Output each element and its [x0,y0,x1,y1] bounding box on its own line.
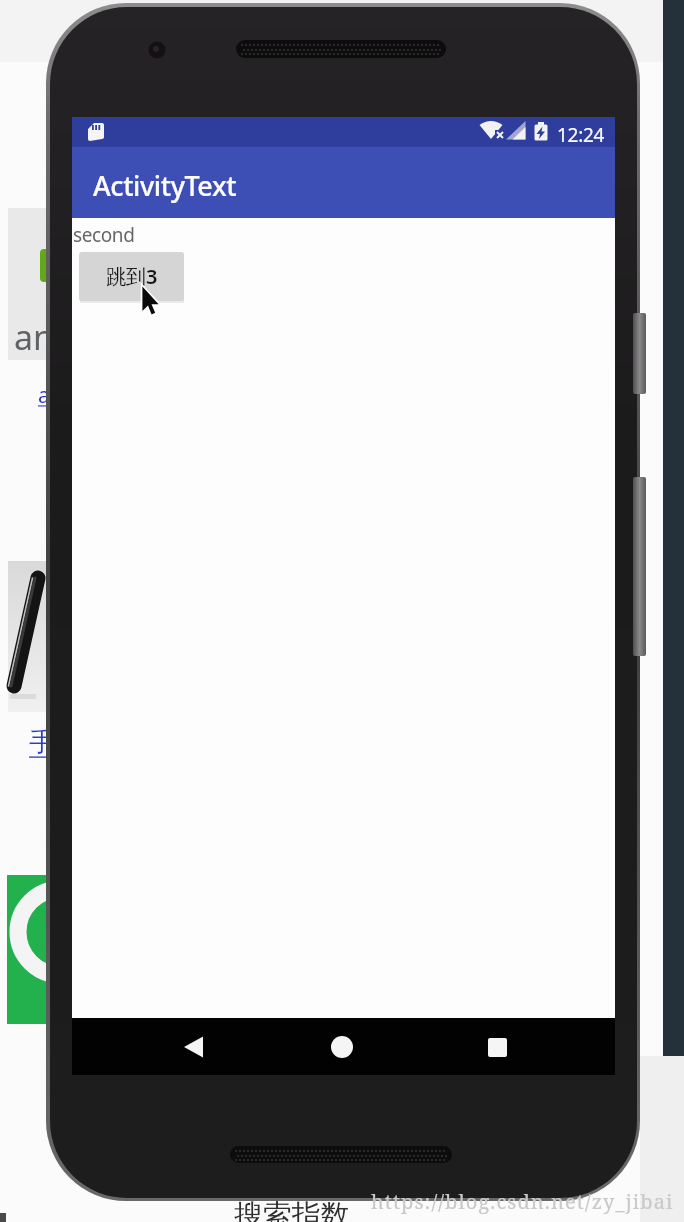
staticText: and [14,314,75,360]
staticText: 12:24 [557,122,605,148]
button[interactable]: 手机 [29,726,81,759]
staticText: https://blog.csdn.net/zy_jibai [371,1188,674,1215]
staticText: 搜索指数 [234,1197,350,1222]
button[interactable]: 跳到3 [79,252,184,301]
staticText: second [73,222,135,248]
button[interactable] [480,1030,514,1064]
button[interactable] [176,1030,210,1064]
button[interactable] [325,1030,359,1064]
staticText: 跳到3 [106,263,158,290]
button[interactable]: al [38,381,56,410]
staticText: ActivityText [93,167,237,204]
